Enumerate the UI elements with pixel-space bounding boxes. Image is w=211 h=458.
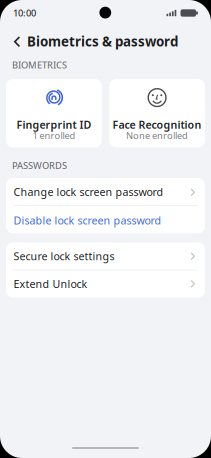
staticText: Secure lock settings <box>13 249 114 263</box>
staticText: PASSWORDS <box>12 159 67 172</box>
staticText: None enrolled <box>126 129 188 142</box>
staticText: Change lock screen password <box>13 185 163 199</box>
staticText: Face Recognition <box>113 117 202 132</box>
staticText: BIOMETRICS <box>12 59 67 71</box>
staticText: 10:00 <box>13 7 36 19</box>
staticText: Disable lock screen password <box>13 213 161 227</box>
staticText: Extend Unlock <box>13 277 87 291</box>
staticText: 1 enrolled <box>32 129 75 142</box>
staticText: Fingerprint ID <box>16 117 91 132</box>
staticText: Biometrics & password <box>27 32 178 50</box>
